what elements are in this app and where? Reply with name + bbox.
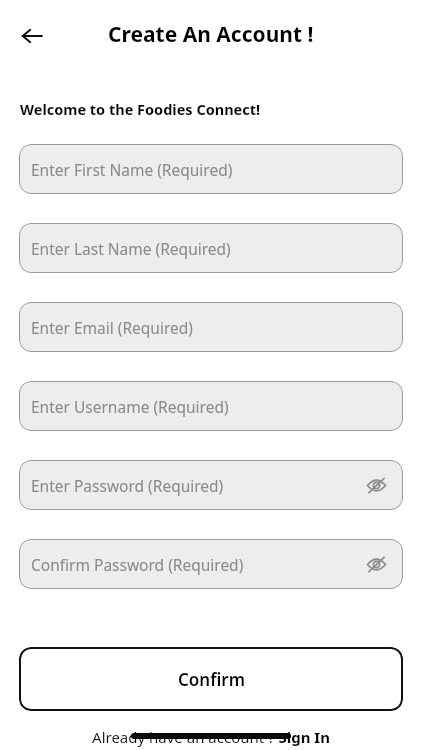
staticText: Already have an account ? Sign In: [92, 727, 330, 747]
button[interactable]: Enter First Name (Required): [19, 144, 403, 194]
button[interactable]: Enter Email (Required): [19, 302, 403, 352]
button[interactable]: Enter Password (Required): [19, 460, 403, 510]
staticText: Enter First Name (Required): [31, 159, 233, 180]
button[interactable]: Already have an account ? Sign In: [0, 727, 422, 747]
staticText: Create An Account !: [108, 20, 314, 49]
button[interactable]: Back: [10, 14, 54, 58]
staticText: Enter Password (Required): [31, 475, 224, 496]
staticText: Confirm: [178, 668, 245, 691]
button[interactable]: Confirm Password (Required): [19, 539, 403, 589]
staticText: Confirm Password (Required): [31, 554, 244, 575]
button[interactable]: Enter Username (Required): [19, 381, 403, 431]
button[interactable]: Show password: [361, 470, 391, 500]
staticText: Enter Email (Required): [31, 317, 193, 338]
staticText: Enter Username (Required): [31, 396, 229, 417]
button[interactable]: Enter Last Name (Required): [19, 223, 403, 273]
staticText: Enter Last Name (Required): [31, 238, 231, 259]
staticText: Welcome to the Foodies Connect!: [20, 99, 261, 119]
button[interactable]: Show password: [361, 549, 391, 579]
button[interactable]: Confirm: [19, 647, 403, 711]
